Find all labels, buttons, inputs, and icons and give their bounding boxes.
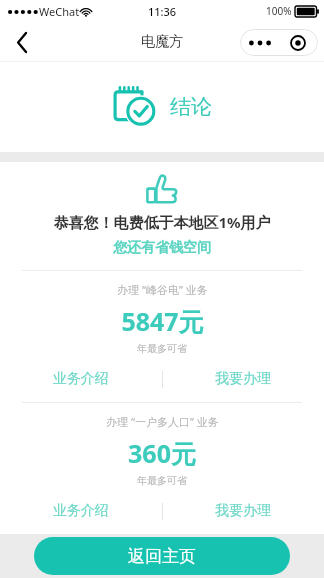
button[interactable]: 我要办理 (162, 366, 324, 392)
button[interactable]: Close (281, 29, 315, 56)
staticText: 您还有省钱空间 (113, 239, 211, 257)
staticText: 我要办理 (215, 370, 271, 388)
staticText: 办理 “峰谷电” 业务 (117, 282, 208, 297)
button[interactable]: 业务介绍 (0, 498, 162, 524)
staticText: 我要办理 (215, 502, 271, 520)
button[interactable]: More (243, 29, 277, 56)
button[interactable]: Back (0, 22, 44, 62)
staticText: 电魔方 (141, 33, 183, 51)
staticText: 年最多可省 (137, 342, 187, 355)
button[interactable]: 我要办理 (162, 498, 324, 524)
staticText: 5847元 (121, 304, 204, 338)
staticText: 恭喜您！电费低于本地区1%用户 (53, 212, 271, 232)
staticText: 业务介绍 (53, 370, 109, 388)
staticText: 结论 (170, 94, 212, 120)
button[interactable]: 返回主页 (34, 537, 290, 575)
staticText: 返回主页 (128, 546, 196, 567)
staticText: 年最多可省 (137, 474, 187, 487)
staticText: 办理 “一户多人口” 业务 (106, 414, 219, 429)
staticText: WeChat (39, 4, 80, 19)
button[interactable]: 业务介绍 (0, 366, 162, 392)
staticText: 360元 (128, 436, 196, 470)
staticText: 11:36 (148, 4, 177, 19)
staticText: 业务介绍 (53, 502, 109, 520)
staticText: 100% (266, 4, 292, 18)
